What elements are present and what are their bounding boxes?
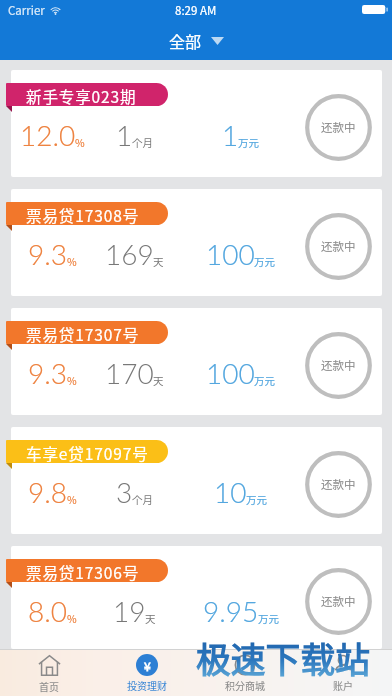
staticText: 车享e贷17097号: [26, 442, 149, 463]
staticText: 9.3: [28, 356, 68, 390]
staticText: 8.0: [28, 594, 68, 628]
staticText: 还款中: [321, 119, 356, 136]
staticText: %: [67, 492, 77, 507]
staticText: 还款中: [321, 476, 356, 493]
button[interactable]: 全部: [149, 23, 244, 58]
staticText: 全部: [169, 29, 202, 52]
staticText: 还款中: [321, 593, 356, 610]
staticText: 12.0: [20, 118, 76, 152]
staticText: 天: [145, 611, 156, 626]
staticText: %: [67, 254, 77, 269]
staticText: 个月: [132, 135, 153, 150]
staticText: 10: [214, 475, 247, 509]
staticText: 账户: [333, 678, 353, 692]
staticText: %: [67, 611, 77, 626]
staticText: 1: [222, 118, 239, 152]
staticText: 万元: [254, 254, 275, 269]
staticText: 天: [153, 373, 164, 388]
button[interactable]: 8.0: [11, 546, 382, 649]
staticText: 19: [113, 594, 146, 628]
staticText: Carrier: [8, 2, 45, 19]
button[interactable]: Home: [0, 650, 98, 696]
staticText: %: [75, 135, 85, 150]
button[interactable]: 9.3: [11, 189, 382, 296]
staticText: 还款中: [321, 238, 356, 255]
staticText: 万元: [258, 611, 279, 626]
staticText: 169: [105, 237, 154, 271]
staticText: 投资理财: [127, 678, 167, 692]
staticText: 9.3: [28, 237, 68, 271]
staticText: 100: [206, 237, 255, 271]
staticText: 170: [105, 356, 154, 390]
staticText: 天: [153, 254, 164, 269]
staticText: 首页: [39, 679, 59, 693]
staticText: 3: [116, 475, 133, 509]
button[interactable]: 9.3: [11, 308, 382, 415]
staticText: 9.8: [28, 475, 68, 509]
staticText: 万元: [254, 373, 275, 388]
staticText: ¥: [144, 657, 151, 674]
button[interactable]: Mall: [196, 650, 294, 696]
staticText: 100: [206, 356, 255, 390]
button[interactable]: Account: [294, 650, 392, 696]
staticText: 个月: [132, 492, 153, 507]
staticText: 9.95: [203, 594, 259, 628]
staticText: 还款中: [321, 357, 356, 374]
staticText: 极速下载站: [196, 633, 370, 683]
staticText: 票易贷17306号: [26, 561, 140, 582]
staticText: 万元: [238, 135, 259, 150]
staticText: 积分商城: [225, 678, 265, 692]
staticText: 票易贷17307号: [26, 323, 140, 344]
button[interactable]: 9.8: [11, 427, 382, 534]
staticText: 新手专享023期: [26, 85, 137, 106]
staticText: 万元: [246, 492, 267, 507]
button[interactable]: Invest: [98, 650, 196, 696]
staticText: 1: [116, 118, 133, 152]
staticText: 票易贷17308号: [26, 204, 140, 225]
staticText: 8:29 AM: [175, 2, 217, 19]
button[interactable]: 12.0: [11, 70, 382, 177]
staticText: %: [67, 373, 77, 388]
